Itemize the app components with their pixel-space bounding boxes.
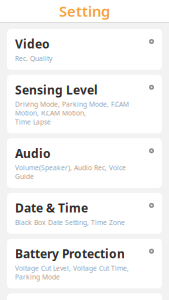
staticText: Driving Mode, Parking Mode, F.CAM Motion… — [15, 100, 129, 126]
button[interactable]: Date & Time — [7, 193, 162, 234]
staticText: Date & Time — [15, 200, 88, 216]
button[interactable]: Sensing Level — [7, 75, 162, 133]
staticText: Battery Protection — [15, 246, 125, 262]
staticText: Voltage Cut Level, Voltage Cut Time, Par… — [15, 264, 129, 281]
button[interactable]: Video — [7, 29, 162, 70]
button[interactable]: Audio — [7, 138, 162, 188]
staticText: Rec. Quality — [15, 54, 52, 63]
staticText: Video — [15, 36, 50, 52]
staticText: Setting — [59, 1, 110, 21]
staticText: Sensing Level — [15, 82, 98, 98]
staticText: Volume(Speaker), Audio Rec, Voice Guide — [15, 163, 126, 181]
staticText: Audio — [15, 145, 51, 161]
staticText: Black Box Date Setting, Time Zone — [15, 218, 125, 227]
button[interactable]: Battery Protection — [7, 239, 162, 288]
